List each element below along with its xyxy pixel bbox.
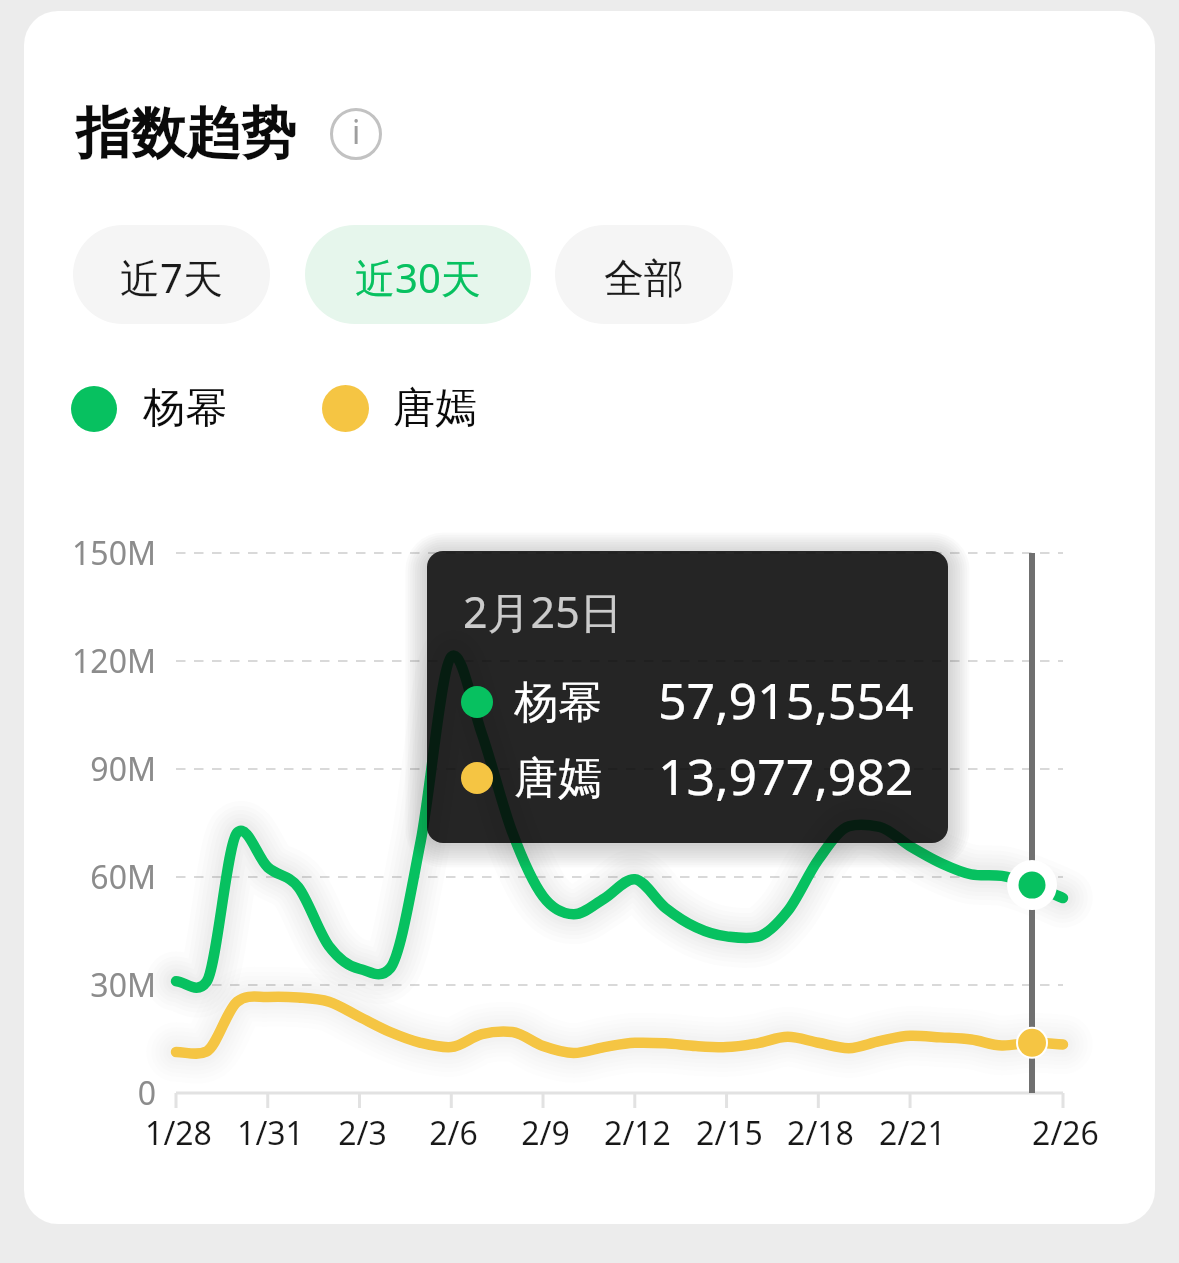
- button[interactable]: 近30天: [305, 225, 531, 324]
- staticText: 120M: [72, 639, 156, 683]
- staticText: 2/18: [787, 1111, 854, 1155]
- button[interactable]: Info: [330, 108, 382, 160]
- staticText: 近7天: [120, 250, 223, 305]
- staticText: 2/15: [696, 1111, 763, 1155]
- staticText: i: [352, 110, 361, 154]
- staticText: 1/28: [145, 1111, 212, 1155]
- staticText: 2/9: [521, 1111, 570, 1155]
- staticText: 2/21: [879, 1111, 946, 1155]
- staticText: 唐嫣: [514, 751, 602, 806]
- staticText: 全部: [604, 253, 684, 303]
- staticText: 2/6: [429, 1111, 478, 1155]
- staticText: 90M: [90, 747, 156, 791]
- staticText: 杨幂: [514, 675, 602, 730]
- button[interactable]: 近7天: [73, 225, 270, 324]
- staticText: 唐嫣: [393, 382, 477, 435]
- staticText: 2/26: [1032, 1111, 1099, 1155]
- staticText: 2/12: [604, 1111, 671, 1155]
- staticText: 0: [137, 1071, 156, 1115]
- staticText: 150M: [72, 531, 156, 575]
- staticText: 2/3: [338, 1111, 387, 1155]
- staticText: 60M: [90, 855, 156, 899]
- staticText: 近30天: [355, 250, 481, 305]
- staticText: 30M: [90, 963, 156, 1007]
- button[interactable]: 全部: [555, 225, 733, 324]
- staticText: 杨幂: [143, 382, 227, 435]
- staticText: 13,977,982: [658, 742, 914, 802]
- staticText: 57,915,554: [658, 666, 914, 726]
- staticText: 1/31: [237, 1111, 304, 1155]
- staticText: 指数趋势: [76, 99, 296, 168]
- staticText: 2月25日: [463, 582, 623, 634]
